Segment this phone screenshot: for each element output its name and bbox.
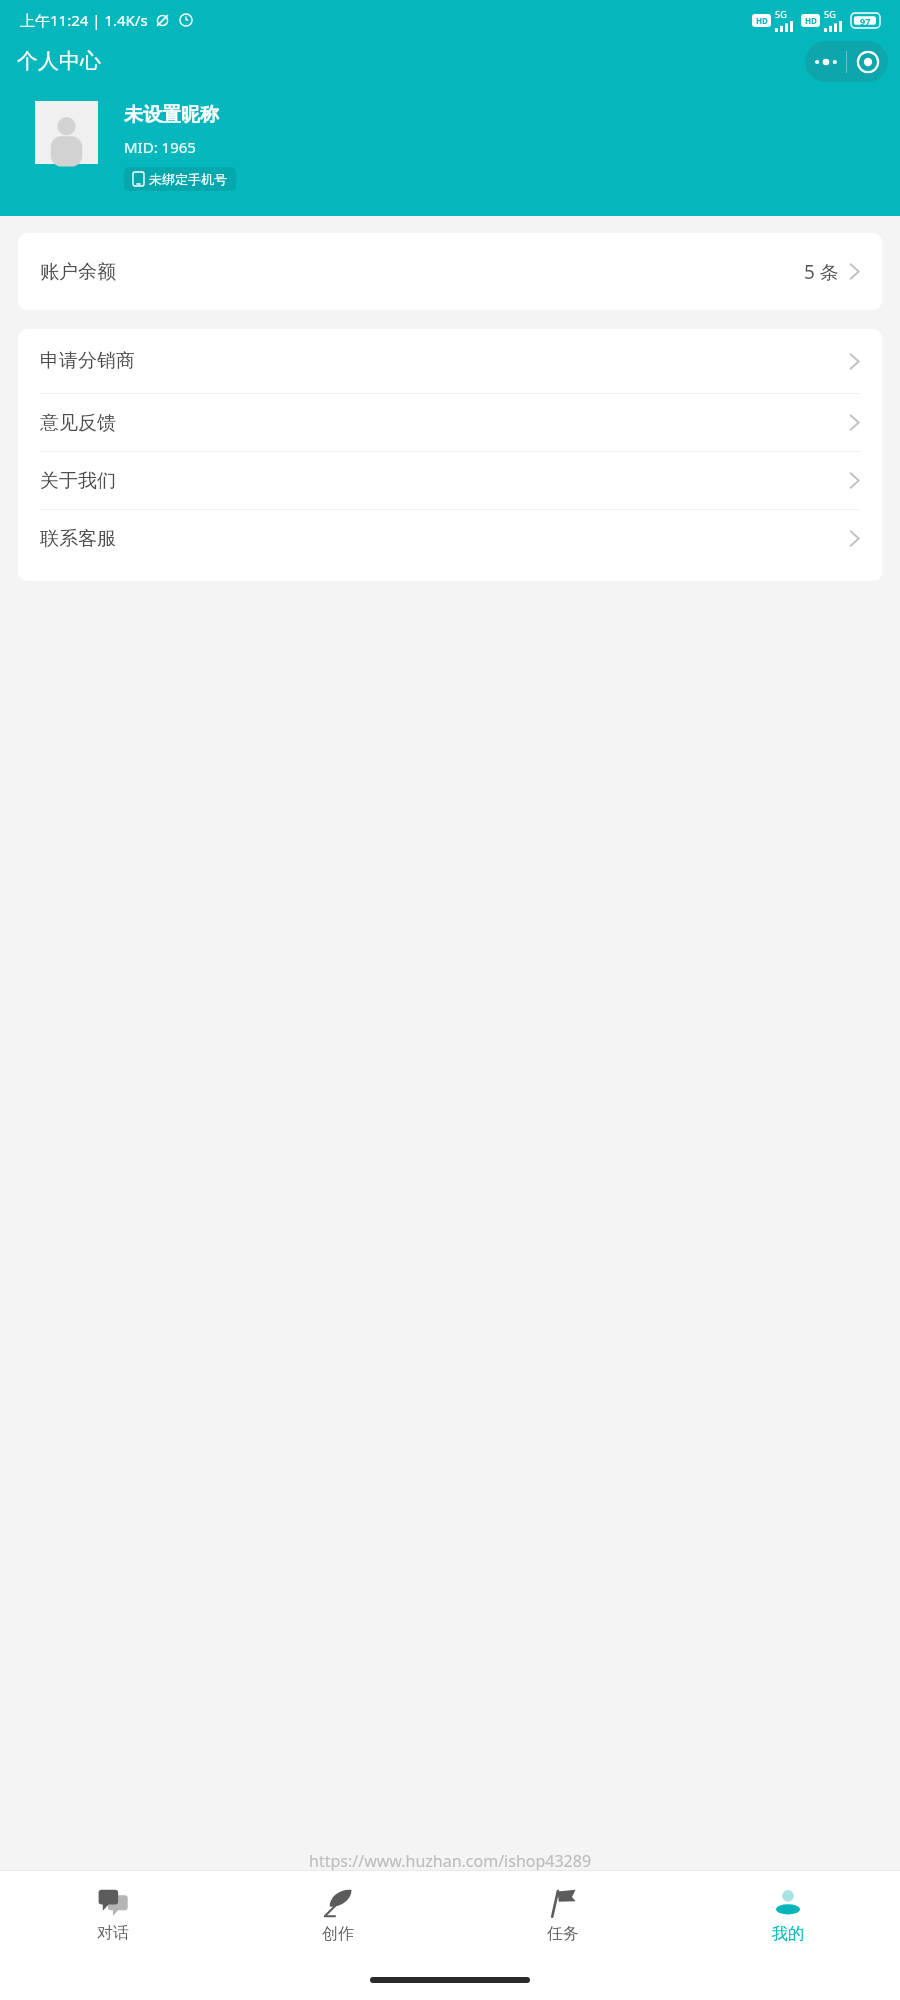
staticText: 账户余额 [40, 260, 116, 284]
button[interactable]: 申请分销商 [18, 329, 882, 393]
button[interactable]: 关于我们 [18, 452, 882, 509]
button[interactable]: 联系客服 [18, 510, 882, 567]
staticText: 意见反馈 [40, 411, 116, 435]
staticText: 个人中心 [17, 48, 101, 74]
button[interactable]: 意见反馈 [18, 394, 882, 451]
button[interactable]: 未绑定手机号 [124, 167, 236, 191]
staticText: 5G [775, 8, 787, 20]
staticText: 5 条 [804, 259, 839, 285]
staticText: 我的 [772, 1924, 804, 1944]
staticText: https://www.huzhan.com/ishop43289 [309, 1850, 592, 1870]
button[interactable]: 账户余额 [18, 233, 882, 310]
button[interactable]: 我的 [675, 1871, 900, 1960]
staticText: 任务 [547, 1924, 579, 1944]
staticText: 97 [860, 15, 871, 27]
staticText: 创作 [322, 1924, 354, 1944]
button[interactable]: More options [805, 41, 846, 82]
staticText: 关于我们 [40, 469, 116, 493]
staticText: 联系客服 [40, 527, 116, 551]
staticText: 上午11:24 | 1.4K/s [20, 10, 148, 30]
staticText: HD [805, 15, 817, 26]
button[interactable]: 对话 [0, 1871, 225, 1960]
button[interactable]: Close [847, 41, 888, 82]
staticText: MID: 1965 [124, 137, 196, 157]
staticText: 对话 [97, 1923, 129, 1943]
staticText: 申请分销商 [40, 349, 135, 373]
button[interactable]: 创作 [225, 1871, 450, 1960]
staticText: 未设置昵称 [124, 103, 219, 127]
staticText: 未绑定手机号 [149, 171, 227, 187]
staticText: HD [756, 15, 768, 26]
button[interactable]: 任务 [450, 1871, 675, 1960]
staticText: 5G [824, 8, 836, 20]
